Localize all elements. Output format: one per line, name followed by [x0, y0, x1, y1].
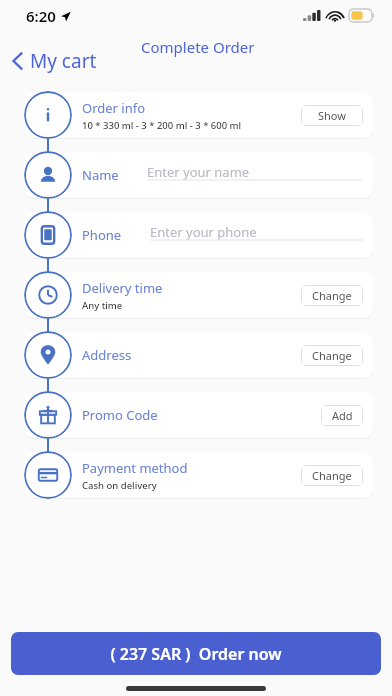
button[interactable]: Change [301, 345, 363, 366]
button[interactable]: Promo Code [24, 391, 72, 439]
staticText: Change [312, 348, 352, 363]
button[interactable]: Change [301, 285, 363, 306]
staticText: Cash on delivery [82, 479, 157, 492]
button[interactable]: Add [321, 405, 363, 426]
button[interactable]: Phone [24, 212, 373, 258]
button[interactable]: Order info [24, 92, 373, 138]
staticText: Address [82, 346, 132, 364]
button[interactable]: Promo Code [24, 392, 373, 438]
staticText: Payment method [82, 459, 188, 477]
button[interactable]: Change [301, 465, 363, 486]
button[interactable]: Phone [24, 211, 72, 259]
staticText: 6:20 [26, 6, 56, 26]
staticText: Delivery time [82, 279, 163, 297]
staticText: Promo Code [82, 406, 158, 424]
staticText: Show [318, 108, 346, 123]
staticText: Name [82, 166, 119, 184]
staticText: 10 * 330 ml - 3 * 200 ml - 3 * 600 ml [82, 119, 242, 132]
button[interactable]: Name [24, 152, 373, 198]
button[interactable]: Payment method [24, 451, 72, 499]
button[interactable]: Address [24, 331, 72, 379]
button[interactable]: Delivery time [24, 271, 72, 319]
button[interactable]: ( 237 SAR ) Order now [11, 632, 381, 675]
button[interactable]: Order info [24, 91, 72, 139]
button[interactable]: My cart [8, 44, 101, 78]
staticText: Add [332, 408, 353, 423]
staticText: Any time [82, 299, 123, 312]
button[interactable]: Address [24, 332, 373, 378]
staticText: Enter your name [147, 163, 250, 181]
staticText: Phone [82, 226, 122, 244]
staticText: Complete Order [141, 37, 255, 57]
staticText: My cart [30, 48, 97, 74]
staticText: Enter your phone [150, 223, 257, 241]
button[interactable]: Name [24, 151, 72, 199]
staticText: Change [312, 288, 352, 303]
staticText: Order info [82, 99, 146, 117]
button[interactable]: Delivery time [24, 272, 373, 318]
button[interactable]: Show [301, 105, 363, 126]
staticText: Change [312, 468, 352, 483]
button[interactable]: Payment method [24, 452, 373, 498]
staticText: ( 237 SAR ) Order now [110, 643, 282, 665]
